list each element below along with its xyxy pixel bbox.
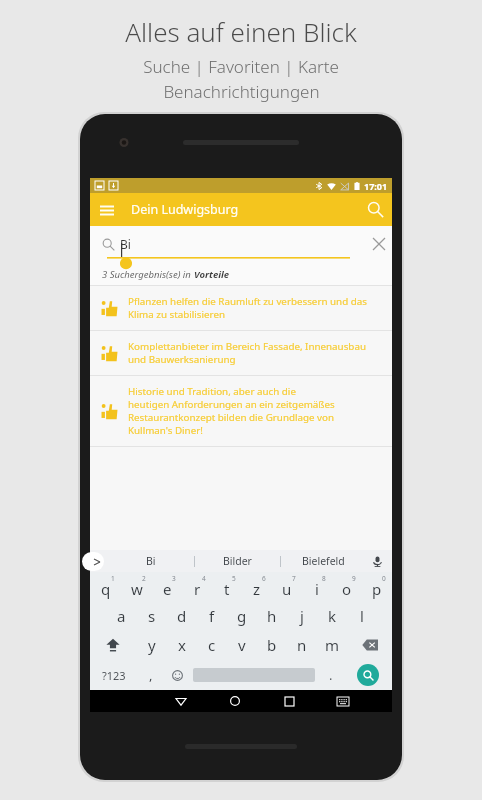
- button[interactable]: 0: [362, 572, 392, 601]
- staticText: k: [328, 606, 337, 626]
- button[interactable]: s: [137, 601, 167, 630]
- staticText: c: [208, 635, 216, 655]
- staticText: 3 Suchergebnis(se) in: [102, 268, 194, 281]
- button[interactable]: x: [167, 630, 197, 660]
- button[interactable]: f: [197, 601, 227, 630]
- staticText: 6: [262, 574, 266, 583]
- staticText: q: [101, 579, 111, 599]
- staticText: Bi: [120, 236, 131, 252]
- button[interactable]: g: [227, 601, 257, 630]
- staticText: 5: [232, 574, 236, 583]
- button[interactable]: h: [257, 601, 287, 630]
- button[interactable]: a: [106, 601, 137, 630]
- button[interactable]: ?123: [90, 660, 137, 690]
- button[interactable]: c: [197, 630, 227, 660]
- staticText: Kullman's Diner!: [128, 424, 203, 437]
- button[interactable]: k: [317, 601, 347, 630]
- staticText: h: [267, 606, 277, 626]
- button[interactable]: 7: [272, 572, 302, 601]
- button[interactable]: Menu: [90, 193, 123, 226]
- staticText: l: [360, 606, 364, 626]
- staticText: f: [209, 606, 215, 626]
- staticText: 17:01: [364, 180, 388, 192]
- button[interactable]: Home: [208, 690, 262, 712]
- button[interactable]: j: [287, 601, 317, 630]
- staticText: Komplettanbieter im Bereich Fassade, Inn…: [128, 340, 366, 353]
- staticText: o: [342, 579, 352, 599]
- button[interactable]: m: [317, 630, 347, 660]
- staticText: s: [148, 606, 156, 626]
- staticText: 8: [322, 574, 326, 583]
- staticText: Benachrichtigungen: [163, 80, 320, 103]
- staticText: v: [238, 635, 246, 655]
- button[interactable]: Komplettanbieter im Bereich Fassade, Inn…: [90, 331, 392, 375]
- staticText: j: [300, 606, 304, 626]
- staticText: 1: [111, 574, 115, 583]
- button[interactable]: Voice input: [366, 550, 388, 572]
- button[interactable]: 5: [212, 572, 242, 601]
- staticText: und Bauwerksanierung: [128, 353, 236, 366]
- button[interactable]: Back: [154, 690, 208, 712]
- button[interactable]: ,: [137, 660, 164, 690]
- staticText: 3: [172, 574, 176, 583]
- button[interactable]: y: [136, 630, 167, 660]
- staticText: Suche | Favoriten | Karte: [143, 55, 339, 78]
- staticText: Restaurantkonzept bilden die Grundlage v…: [128, 411, 335, 424]
- button[interactable]: b: [257, 630, 287, 660]
- staticText: e: [163, 579, 172, 599]
- staticText: Alles auf einen Blick: [125, 14, 357, 49]
- button[interactable]: n: [287, 630, 317, 660]
- button[interactable]: Emoji: [164, 660, 191, 690]
- button[interactable]: 6: [242, 572, 272, 601]
- staticText: m: [325, 635, 340, 655]
- staticText: w: [131, 579, 143, 599]
- staticText: x: [178, 635, 186, 655]
- button[interactable]: Search: [357, 664, 379, 686]
- staticText: 0: [382, 574, 386, 583]
- button[interactable]: Bilder: [195, 550, 280, 572]
- staticText: d: [177, 606, 187, 626]
- button[interactable]: d: [167, 601, 197, 630]
- button[interactable]: 9: [332, 572, 362, 601]
- button[interactable]: Recent apps: [262, 690, 316, 712]
- button[interactable]: Shift: [90, 630, 136, 660]
- button[interactable]: l: [347, 601, 377, 630]
- button[interactable]: 2: [121, 572, 152, 601]
- staticText: 4: [202, 574, 206, 583]
- button[interactable]: 3: [152, 572, 182, 601]
- staticText: Bi: [146, 554, 156, 568]
- staticText: b: [267, 635, 277, 655]
- button[interactable]: 8: [302, 572, 332, 601]
- button[interactable]: 4: [182, 572, 212, 601]
- button[interactable]: Pflanzen helfen die Raumluft zu verbesse…: [90, 286, 392, 330]
- button[interactable]: Search: [359, 193, 392, 226]
- staticText: .: [329, 666, 333, 684]
- button[interactable]: v: [227, 630, 257, 660]
- staticText: u: [282, 579, 292, 599]
- staticText: Bielefeld: [302, 554, 345, 568]
- staticText: p: [372, 579, 382, 599]
- staticText: Vorteile: [194, 268, 230, 281]
- staticText: Historie und Tradition, aber auch die: [128, 385, 296, 398]
- button[interactable]: Hide keyboard: [316, 690, 370, 712]
- staticText: Bilder: [223, 554, 252, 568]
- button[interactable]: More suggestions: [82, 552, 104, 571]
- staticText: heutigen Anforderungen an ein zeitgemäße…: [128, 398, 335, 411]
- staticText: r: [194, 579, 201, 599]
- staticText: Pflanzen helfen die Raumluft zu verbesse…: [128, 295, 367, 308]
- button[interactable]: Historie und Tradition, aber auch die: [90, 376, 392, 446]
- button[interactable]: Bielefeld: [281, 550, 366, 572]
- button[interactable]: Bi: [108, 550, 194, 572]
- staticText: z: [253, 579, 261, 599]
- button[interactable]: Clear search: [366, 231, 392, 257]
- staticText: ?123: [102, 668, 126, 683]
- staticText: i: [315, 579, 319, 599]
- button[interactable]: .: [317, 660, 344, 690]
- staticText: n: [297, 635, 307, 655]
- staticText: t: [224, 579, 230, 599]
- staticText: g: [237, 606, 247, 626]
- button[interactable]: 1: [90, 572, 121, 601]
- staticText: a: [117, 606, 126, 626]
- button[interactable]: Backspace: [347, 630, 392, 660]
